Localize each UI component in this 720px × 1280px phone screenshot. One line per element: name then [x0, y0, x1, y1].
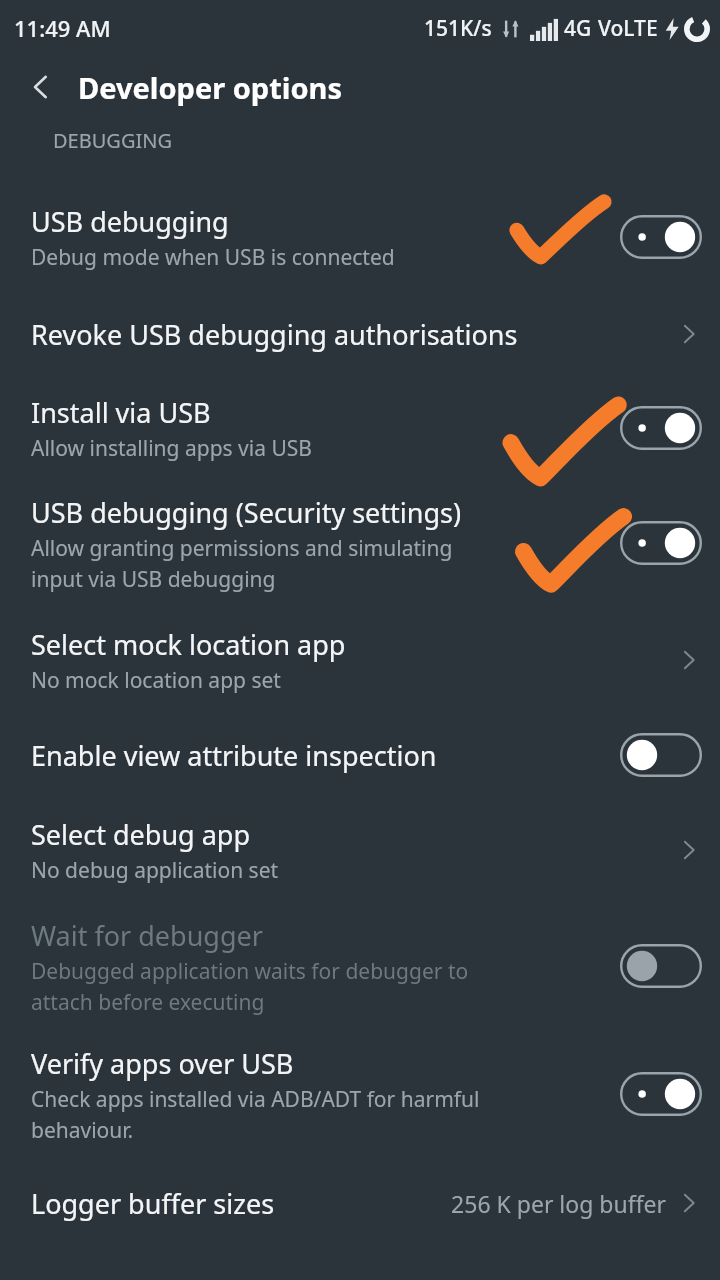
staticText: Check apps installed via ADB/ADT for har… — [31, 1085, 480, 1144]
staticText: Verify apps over USB — [31, 1045, 294, 1082]
button[interactable]: Toggle on — [620, 406, 702, 450]
staticText: No debug application set — [31, 856, 279, 885]
button[interactable]: USB debugging — [0, 184, 720, 290]
button[interactable]: Select debug app — [0, 798, 720, 902]
button[interactable]: Toggle off — [620, 944, 702, 988]
button[interactable]: Toggle on — [620, 215, 702, 259]
button[interactable]: Toggle on — [620, 521, 702, 565]
button[interactable]: USB debugging (Security settings) — [0, 478, 720, 608]
staticText: Logger buffer sizes — [31, 1185, 275, 1222]
staticText: Select debug app — [31, 816, 251, 853]
staticText: USB debugging — [31, 203, 229, 240]
staticText: Select mock location app — [31, 626, 346, 663]
button[interactable]: Verify apps over USB — [0, 1030, 720, 1158]
button[interactable]: Logger buffer sizes — [0, 1158, 720, 1248]
staticText: USB debugging (Security settings) — [31, 494, 462, 531]
staticText: 4G — [564, 14, 592, 43]
staticText: Developer options — [78, 68, 342, 107]
staticText: Debugged application waits for debugger … — [31, 957, 469, 1016]
button[interactable]: Select mock location app — [0, 608, 720, 712]
staticText: VoLTE — [598, 14, 658, 43]
staticText: Debug mode when USB is connected — [31, 243, 395, 272]
button[interactable]: Toggle on — [620, 1072, 702, 1116]
staticText: Enable view attribute inspection — [31, 737, 437, 774]
staticText: 151K/s — [424, 14, 492, 43]
staticText: Allow granting permissions and simulatin… — [31, 534, 453, 593]
button[interactable]: Install via USB — [0, 378, 720, 478]
button[interactable]: Toggle off — [620, 733, 702, 777]
button[interactable]: Back — [26, 72, 56, 102]
staticText: Install via USB — [31, 394, 211, 431]
staticText: 11:49 AM — [14, 13, 111, 43]
button[interactable]: Revoke USB debugging authorisations — [0, 290, 720, 378]
staticText: 256 K per log buffer — [451, 1188, 666, 1219]
staticText: DEBUGGING — [53, 127, 172, 154]
staticText: Revoke USB debugging authorisations — [31, 316, 518, 353]
staticText: Wait for debugger — [31, 917, 263, 954]
button[interactable]: Enable view attribute inspection — [0, 712, 720, 798]
button[interactable]: Wait for debugger — [0, 902, 720, 1030]
staticText: No mock location app set — [31, 666, 281, 695]
staticText: Allow installing apps via USB — [31, 434, 312, 463]
